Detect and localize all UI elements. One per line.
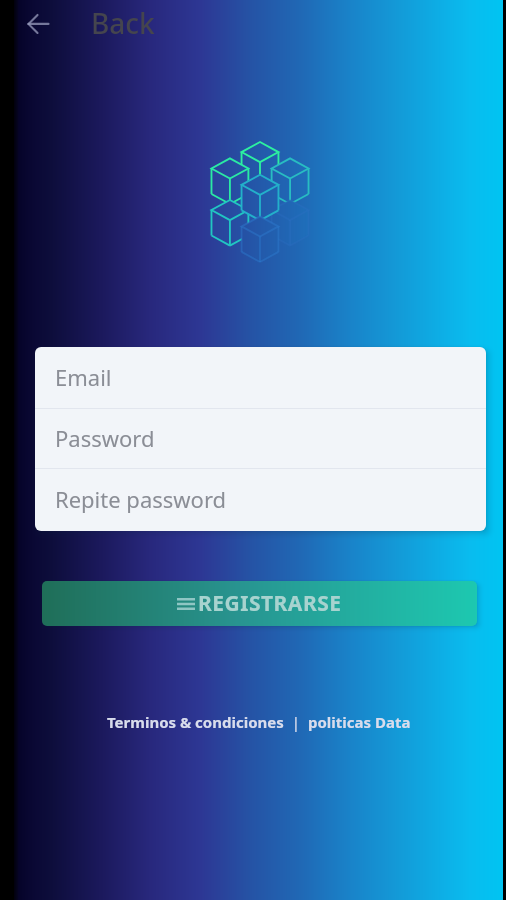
button[interactable]: Email xyxy=(35,347,486,408)
staticText: Password xyxy=(55,423,155,453)
button[interactable]: Back xyxy=(21,6,55,40)
staticText: Repite password xyxy=(55,484,227,514)
button[interactable]: REGISTRARSE xyxy=(42,581,477,626)
staticText: | xyxy=(284,712,308,732)
button[interactable]: Password xyxy=(35,409,486,468)
button[interactable]: Repite password xyxy=(35,469,486,531)
staticText: REGISTRARSE xyxy=(198,589,342,618)
staticText: Back xyxy=(91,4,155,42)
staticText: Email xyxy=(55,362,112,392)
button[interactable]: politicas Data xyxy=(308,712,411,732)
button[interactable]: Terminos & condiciones xyxy=(107,712,284,732)
